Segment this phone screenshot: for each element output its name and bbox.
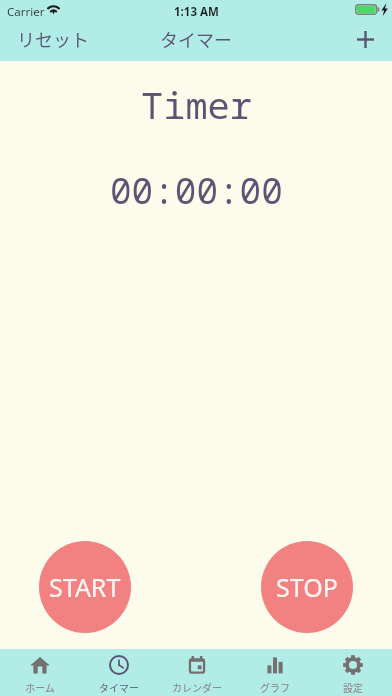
- button[interactable]: グラフ: [236, 649, 314, 696]
- staticText: STOP: [276, 570, 338, 604]
- staticText: ホーム: [25, 680, 55, 694]
- button[interactable]: ホーム: [0, 649, 79, 696]
- button[interactable]: START: [39, 541, 131, 633]
- button[interactable]: STOP: [261, 541, 353, 633]
- staticText: リセット: [17, 26, 89, 52]
- staticText: タイマー: [99, 680, 139, 694]
- button[interactable]: 設定: [314, 649, 392, 696]
- staticText: 00:00:00: [110, 166, 283, 215]
- button[interactable]: カレンダー: [158, 649, 236, 696]
- button[interactable]: リセット: [0, 24, 99, 60]
- staticText: グラフ: [260, 680, 290, 694]
- staticText: Timer: [141, 79, 252, 129]
- staticText: 1:13 AM: [174, 4, 219, 20]
- staticText: START: [49, 570, 121, 604]
- button[interactable]: Add timer: [343, 26, 392, 57]
- staticText: 設定: [343, 680, 363, 694]
- button[interactable]: タイマー: [79, 649, 158, 696]
- staticText: Carrier: [7, 4, 45, 20]
- staticText: カレンダー: [172, 680, 222, 694]
- staticText: タイマー: [160, 26, 232, 52]
